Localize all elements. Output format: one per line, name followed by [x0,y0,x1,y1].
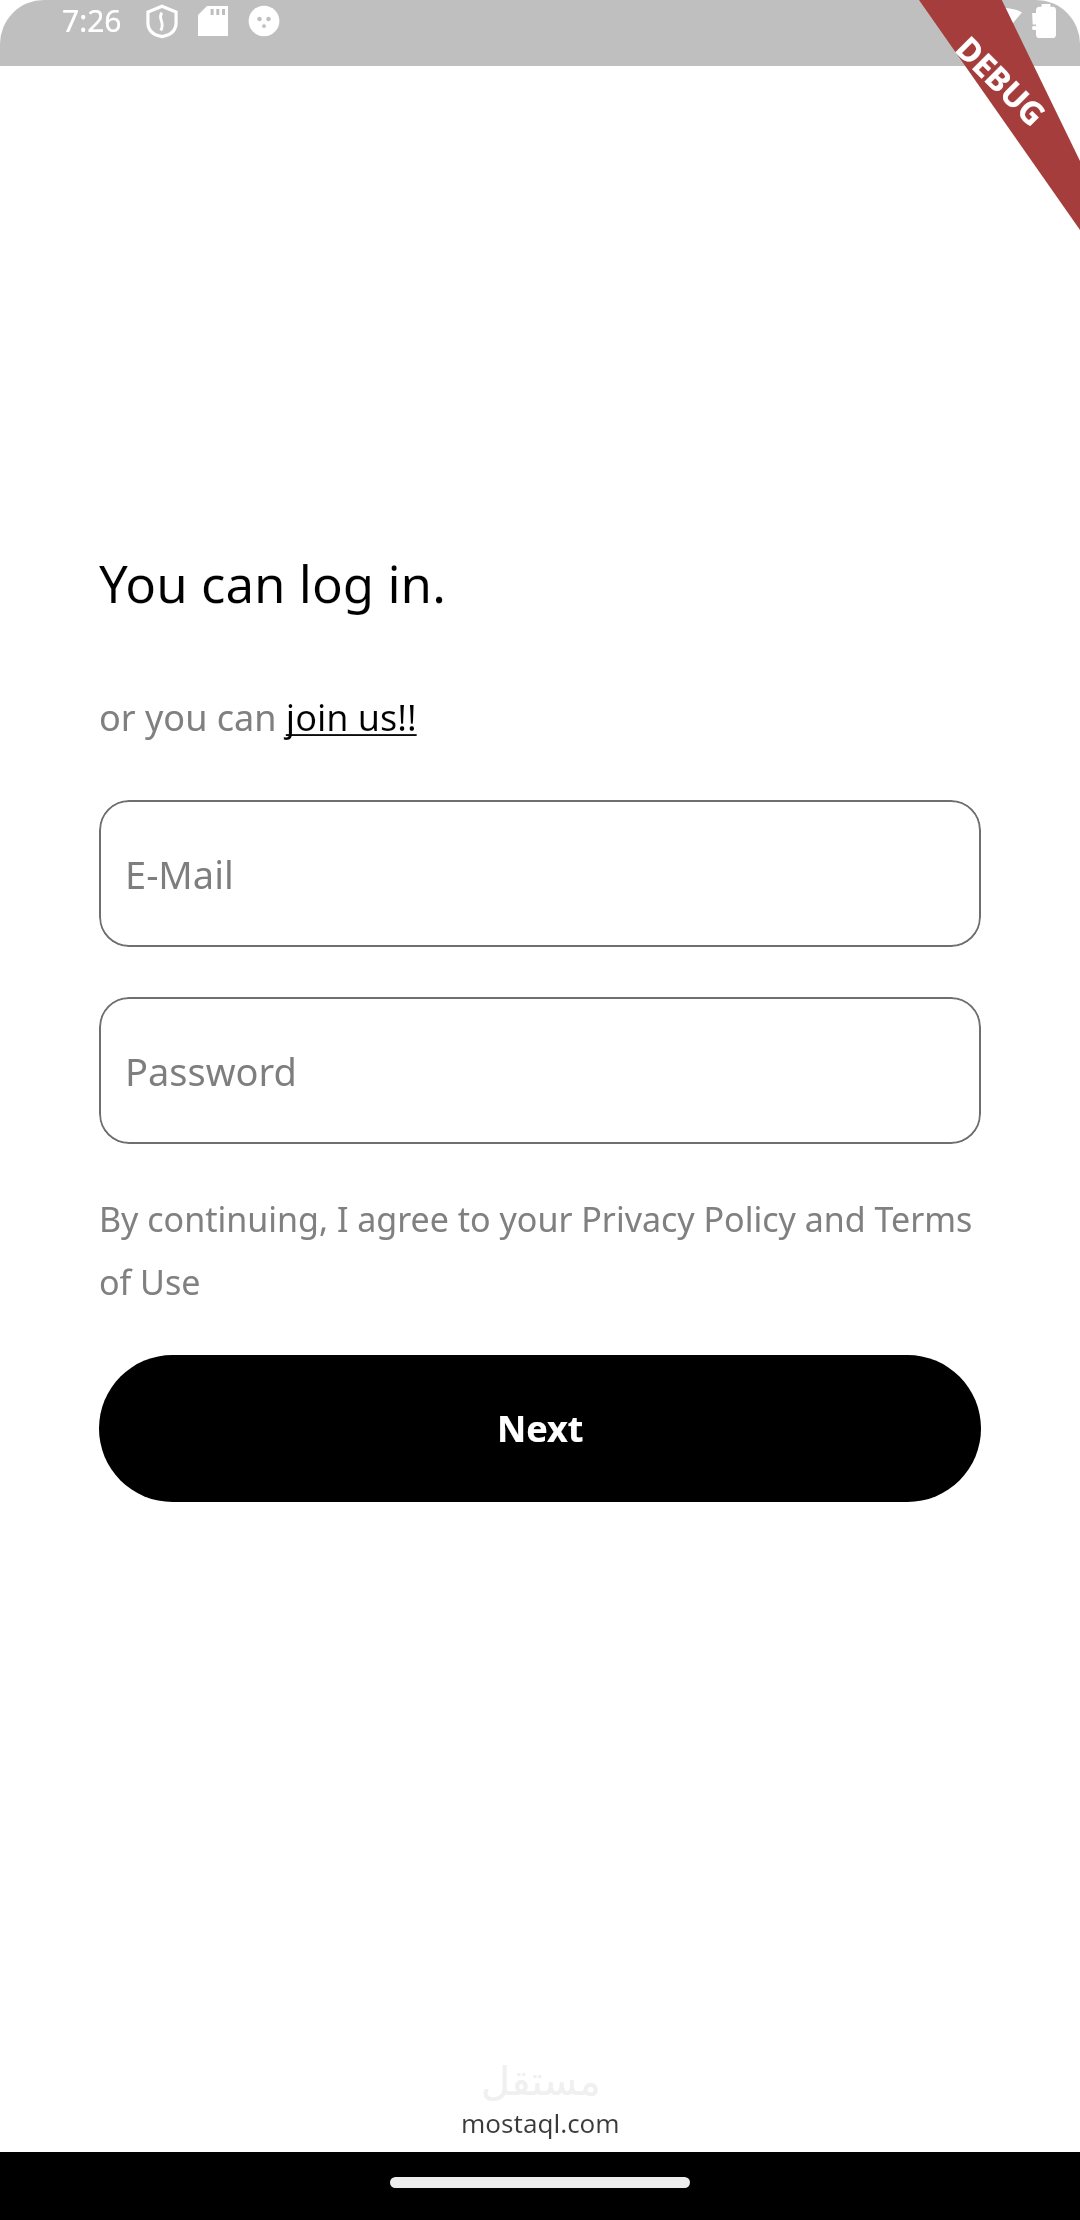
staticText: DEBUG [947,27,1055,135]
button[interactable]: Password [99,997,981,1144]
button[interactable]: Next [99,1355,981,1502]
staticText: By continuing, I agree to your Privacy P… [99,1196,981,1305]
staticText: You can log in. [99,548,446,617]
staticText: mostaql.com [461,2105,620,2140]
staticText: 7:26 [62,0,122,41]
staticText: Password [125,1045,297,1097]
other: Home [390,2177,690,2188]
button[interactable]: or you can join us!! [99,693,417,742]
button[interactable]: E-Mail [99,800,981,947]
staticText: Next [497,1404,584,1453]
staticText: or you can join us!! [99,693,417,742]
staticText: E-Mail [125,848,234,900]
staticText: مستقل [481,2058,601,2105]
staticText: ! [1031,4,1038,37]
